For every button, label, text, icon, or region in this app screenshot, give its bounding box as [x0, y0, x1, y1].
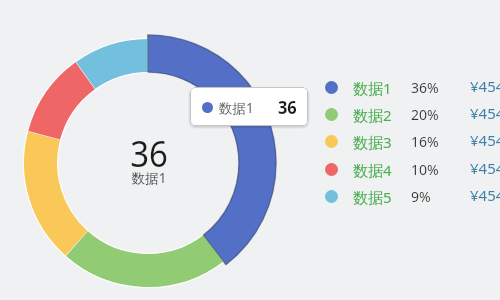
- button[interactable]: 数据1: [322, 73, 500, 100]
- staticText: 20%: [411, 105, 439, 124]
- staticText: ¥4545: [470, 158, 500, 178]
- staticText: 数据2: [353, 105, 392, 125]
- button[interactable]: 数据3: [322, 127, 500, 154]
- staticText: 数据3: [353, 132, 392, 152]
- staticText: 数据1: [89, 169, 209, 187]
- other: Donut chart of 数据1 to 数据5: [0, 0, 500, 300]
- staticText: 数据4: [353, 160, 392, 180]
- staticText: 9%: [411, 187, 431, 206]
- button[interactable]: 数据2: [322, 100, 500, 127]
- staticText: 36: [96, 127, 202, 177]
- staticText: 36: [278, 95, 297, 120]
- button[interactable]: 数据1: [190, 87, 308, 126]
- staticText: 10%: [411, 160, 439, 179]
- staticText: ¥4545: [470, 130, 500, 150]
- staticText: ¥4545: [470, 103, 500, 123]
- staticText: 36%: [411, 78, 439, 97]
- staticText: 数据1: [219, 99, 254, 117]
- staticText: 16%: [411, 132, 439, 151]
- staticText: 数据1: [353, 78, 392, 98]
- staticText: 数据5: [353, 187, 392, 207]
- staticText: ¥4545: [470, 185, 500, 205]
- button[interactable]: 数据4: [322, 155, 500, 182]
- button[interactable]: 数据5: [322, 182, 500, 209]
- staticText: ¥4545: [470, 76, 500, 96]
